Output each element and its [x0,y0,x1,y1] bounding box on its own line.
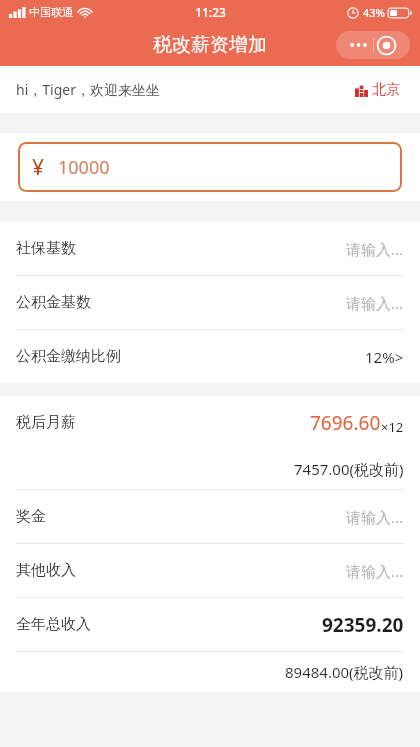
staticText: 公积金基数 [16,293,91,312]
staticText: 社保基数 [16,239,76,258]
staticText: 7457.00(税改前) [294,459,404,479]
staticText: 11:23 [195,4,226,20]
staticText: 税后月薪 [16,413,76,432]
button[interactable]: 社保基数 [0,222,420,275]
staticText: 请输入... [346,507,404,527]
button[interactable]: 公积金缴纳比例 [0,330,420,383]
staticText: 12%> [365,347,404,367]
staticText: 10000 [58,155,110,180]
staticText: 税改薪资增加 [153,33,267,57]
staticText: 其他收入 [16,561,76,580]
button[interactable]: More options and target [336,31,410,59]
button[interactable]: 全年总收入 [0,598,420,651]
staticText: 北京 [372,81,400,99]
button[interactable]: 奖金 [0,490,420,543]
button[interactable]: 公积金基数 [0,276,420,329]
staticText: 请输入... [346,239,404,259]
staticText: 89484.00(税改前) [285,662,404,682]
staticText: 43% [363,5,385,20]
button[interactable]: 税后月薪 [0,396,420,449]
button[interactable]: 北京 [351,77,404,103]
staticText: 92359.20 [322,612,404,638]
staticText: ×12 [381,418,404,436]
staticText: 奖金 [16,507,46,526]
staticText: 中国联通 [29,5,73,19]
staticText: 公积金缴纳比例 [16,347,121,366]
staticText: ¥ [32,153,45,182]
button[interactable]: 其他收入 [0,544,420,597]
staticText: hi，Tiger，欢迎来坐坐 [16,80,160,99]
staticText: 7696.60 [310,410,381,436]
staticText: 请输入... [346,561,404,581]
staticText: 全年总收入 [16,615,91,634]
button[interactable]: ¥ [18,142,402,192]
staticText: 请输入... [346,293,404,313]
